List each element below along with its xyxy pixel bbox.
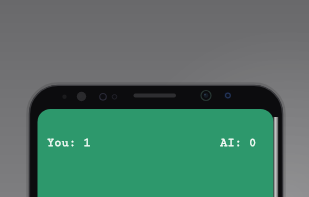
button[interactable] bbox=[38, 109, 273, 197]
staticText: You: 1 bbox=[47, 136, 91, 149]
staticText: AI: 0 bbox=[220, 136, 257, 149]
